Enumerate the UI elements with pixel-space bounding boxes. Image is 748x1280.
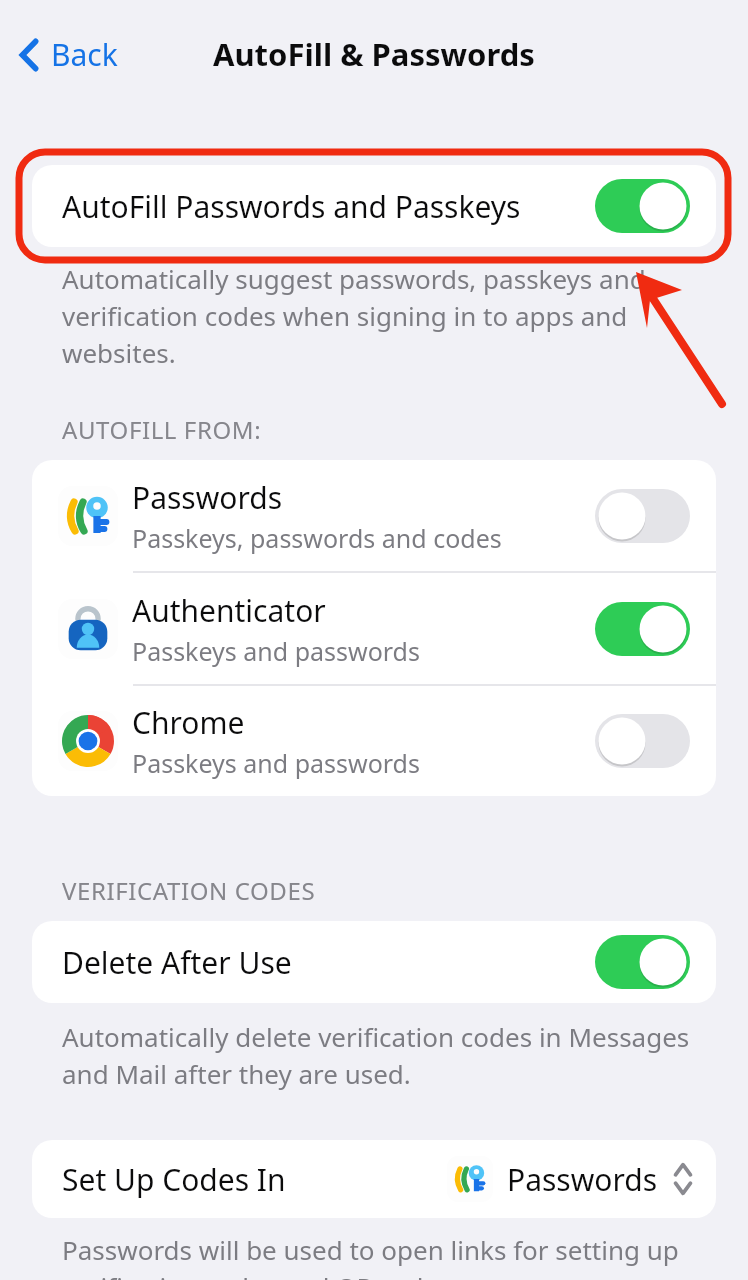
button[interactable]: On [595, 179, 690, 233]
button[interactable]: Off [595, 489, 690, 543]
staticText: Passwords [507, 1159, 658, 1200]
staticText: Passwords will be used to open links for… [62, 1232, 679, 1280]
staticText: Passwords [132, 477, 283, 518]
staticText: Authenticator [132, 590, 326, 631]
button[interactable]: Delete After Use [32, 921, 716, 1003]
staticText: Automatically suggest passwords, passkey… [62, 261, 646, 371]
button[interactable]: Chrome [32, 686, 716, 796]
staticText: Set Up Codes In [62, 1159, 286, 1200]
button[interactable]: Set Up Codes In [32, 1140, 716, 1218]
button[interactable]: On [595, 602, 690, 656]
staticText: Passkeys, passwords and codes [132, 521, 502, 555]
staticText: AUTOFILL FROM: [62, 413, 262, 446]
staticText: Delete After Use [62, 942, 292, 983]
staticText: Back [51, 34, 118, 75]
staticText: AutoFill Passwords and Passkeys [62, 186, 521, 227]
button[interactable]: Authenticator [32, 573, 716, 686]
button[interactable]: Passwords [32, 460, 716, 573]
button[interactable]: On [595, 935, 690, 989]
staticText: VERIFICATION CODES [62, 874, 316, 907]
button[interactable]: AutoFill Passwords and Passkeys [32, 165, 716, 247]
staticText: Chrome [132, 702, 245, 743]
staticText: Passkeys and passwords [132, 634, 420, 668]
button[interactable]: Back [10, 28, 126, 81]
staticText: Passkeys and passwords [132, 746, 420, 780]
staticText: AutoFill & Passwords [213, 33, 535, 75]
button[interactable]: Off [595, 714, 690, 768]
staticText: Automatically delete verification codes … [62, 1019, 690, 1092]
